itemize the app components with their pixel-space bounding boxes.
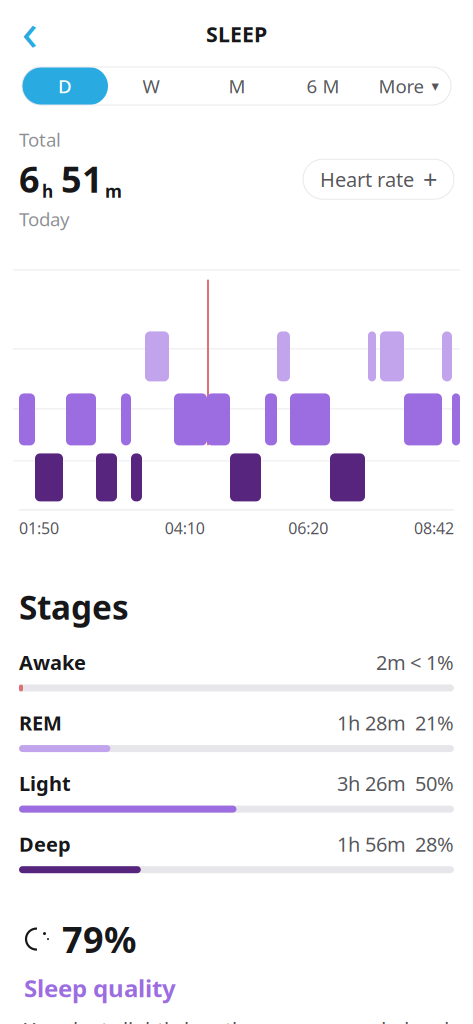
staticText: 79% xyxy=(62,915,136,963)
staticText: ‹ xyxy=(21,0,38,65)
staticText: Heart rate xyxy=(320,166,414,192)
staticText: M xyxy=(228,74,245,98)
staticText: 6 xyxy=(19,155,40,203)
staticText: 51 xyxy=(61,155,103,203)
staticText: + xyxy=(423,162,437,196)
staticText: ▾ xyxy=(431,78,438,94)
staticText: 01:50 xyxy=(19,517,59,539)
staticText: 08:42 xyxy=(414,517,454,539)
button[interactable]: Back xyxy=(8,12,52,56)
staticText: 04:10 xyxy=(165,517,205,539)
staticText: Sleep quality xyxy=(24,972,176,1004)
staticText: 1h 56m xyxy=(337,831,406,857)
button[interactable]: 6 M xyxy=(280,67,366,105)
button[interactable]: More xyxy=(366,67,451,105)
staticText: More xyxy=(378,74,424,98)
staticText: 2m xyxy=(376,649,406,675)
staticText: Total xyxy=(19,127,61,152)
staticText: Light xyxy=(19,770,71,797)
staticText: D xyxy=(58,74,72,98)
staticText: Deep xyxy=(19,831,71,857)
button[interactable]: M xyxy=(194,67,280,105)
staticText: 50% xyxy=(415,770,454,797)
staticText: You slept slightly less than recommended… xyxy=(24,1016,449,1024)
button[interactable]: W xyxy=(108,67,194,105)
staticText: h xyxy=(42,180,53,203)
staticText: 28% xyxy=(415,831,454,857)
staticText: 3h 26m xyxy=(337,770,406,797)
staticText: Today xyxy=(19,207,70,231)
button[interactable]: Heart rate xyxy=(303,159,454,199)
staticText: SLEEP xyxy=(206,20,267,48)
staticText: 06:20 xyxy=(288,517,328,539)
staticText: 1h 28m xyxy=(337,709,406,736)
button[interactable]: D xyxy=(22,67,108,105)
staticText: 21% xyxy=(415,709,454,736)
staticText: REM xyxy=(19,709,62,736)
staticText: < 1% xyxy=(410,649,454,675)
staticText: 6 M xyxy=(306,74,339,98)
staticText: m xyxy=(105,180,122,203)
staticText: Awake xyxy=(19,649,86,675)
staticText: Stages xyxy=(19,585,129,629)
staticText: W xyxy=(142,74,159,98)
